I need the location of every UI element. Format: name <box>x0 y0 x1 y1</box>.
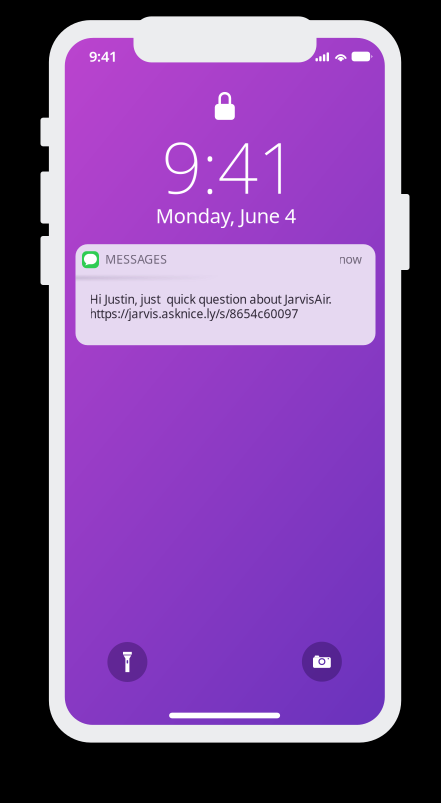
staticText: Hi Justin, just quick question about Jar… <box>89 291 331 307</box>
staticText: MESSAGES <box>105 251 167 267</box>
button[interactable]: Flashlight <box>107 642 147 682</box>
button[interactable]: MESSAGES <box>75 244 375 345</box>
staticText: 9:41 <box>162 119 298 213</box>
staticText: now <box>338 251 361 267</box>
staticText: 9:41 <box>89 46 117 66</box>
staticText: Monday, June 4 <box>156 202 296 229</box>
button[interactable]: Camera <box>302 642 342 682</box>
staticText: https://jarvis.asknice.ly/s/8654c60097 <box>89 306 298 322</box>
